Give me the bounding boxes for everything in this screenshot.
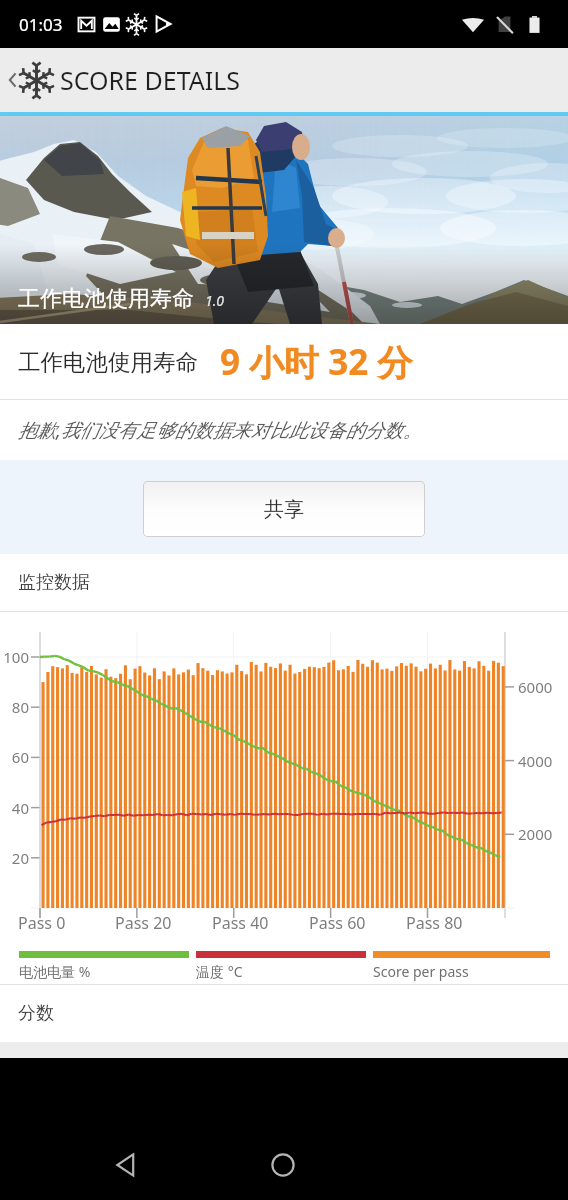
staticText: 20 [11, 848, 29, 868]
staticText: 工作电池使用寿命 [18, 348, 198, 376]
staticText: 抱歉,我们没有足够的数据来对比此设备的分数。 [18, 417, 422, 443]
staticText: 6000 [518, 677, 553, 697]
staticText: SCORE DETAILS [60, 63, 241, 97]
staticText: 01:03 [19, 13, 63, 36]
staticText: 监控数据 [18, 571, 90, 594]
button[interactable]: 共享 [143, 481, 425, 537]
staticText: 9 小时 32 分 [220, 338, 413, 386]
staticText: 1.0 [205, 291, 225, 310]
button[interactable]: Back [102, 1141, 150, 1189]
staticText: 电池电量 % [19, 962, 91, 981]
staticText: 温度 °C [196, 962, 243, 981]
staticText: Pass 0 [18, 912, 66, 934]
staticText: 100 [3, 647, 29, 667]
button[interactable]: Home [259, 1141, 307, 1189]
staticText: Score per pass [373, 962, 469, 981]
staticText: 4000 [518, 751, 553, 771]
button[interactable]: Back [0, 48, 568, 112]
staticText: 40 [11, 798, 29, 818]
staticText: 80 [11, 697, 29, 717]
other: Back [5, 72, 21, 88]
staticText: Pass 40 [212, 912, 269, 934]
staticText: Pass 60 [309, 912, 366, 934]
staticText: Pass 20 [115, 912, 172, 934]
staticText: 工作电池使用寿命 [18, 285, 194, 313]
staticText: 共享 [264, 497, 304, 522]
staticText: 60 [11, 747, 29, 767]
staticText: 分数 [18, 1002, 54, 1025]
staticText: 2000 [518, 824, 553, 844]
staticText: Pass 80 [406, 912, 463, 934]
